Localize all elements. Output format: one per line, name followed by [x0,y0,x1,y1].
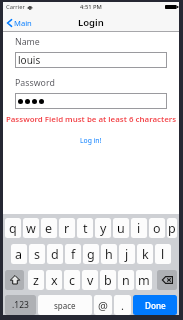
staticText: y [100,220,107,237]
button[interactable]: n [118,270,134,290]
button[interactable]: x [46,270,62,290]
button[interactable]: h [101,244,117,264]
staticText: p [168,220,176,237]
button[interactable]: Done [133,295,177,315]
button[interactable]: c [64,270,80,290]
button[interactable]: d [47,244,63,264]
button[interactable]: Main [3,16,38,30]
button[interactable]: . [114,295,131,315]
button[interactable] [15,93,167,109]
staticText: Login [78,16,104,29]
staticText: u [117,220,125,237]
staticText: m [138,272,150,289]
button[interactable]: a [11,244,27,264]
staticText: s [34,246,40,263]
button[interactable]: Shift [5,270,24,290]
button[interactable]: r [59,218,75,238]
button[interactable]: Log in! [76,134,106,147]
button[interactable]: g [83,244,99,264]
staticText: .123 [12,299,29,311]
staticText: a [15,246,23,263]
button[interactable]: p [167,218,177,238]
staticText: e [45,220,53,237]
staticText: Done [145,300,166,311]
button[interactable]: i [131,218,147,238]
button[interactable]: l [155,244,171,264]
button[interactable]: s [29,244,45,264]
staticText: f [71,246,76,263]
staticText: w [26,220,36,237]
staticText: g [87,246,95,263]
staticText: n [122,272,130,289]
staticText: Name [15,36,40,48]
button[interactable]: t [77,218,93,238]
button[interactable]: .123 [5,295,36,315]
button[interactable]: j [119,244,135,264]
button[interactable]: w [23,218,39,238]
staticText: j [125,246,129,263]
staticText: t [83,220,88,237]
staticText: k [142,246,149,263]
staticText: Log in! [80,136,102,145]
staticText: louis [18,53,41,67]
button[interactable]: louis [15,52,167,68]
button[interactable]: u [113,218,129,238]
staticText: b [104,272,112,289]
button[interactable]: e [41,218,57,238]
button[interactable]: q [5,218,21,238]
button[interactable]: y [95,218,111,238]
button[interactable]: b [100,270,116,290]
button[interactable]: k [137,244,153,264]
staticText: d [51,246,59,263]
staticText: Password Field must be at least 6 charac… [3,114,179,125]
staticText: . [121,298,124,313]
button[interactable]: f [65,244,81,264]
staticText: q [9,220,17,237]
button[interactable]: o [149,218,165,238]
button[interactable]: z [28,270,44,290]
staticText: l [161,246,165,263]
staticText: r [64,220,70,237]
button[interactable]: space [38,295,92,315]
staticText: Password [15,77,55,89]
staticText: space [54,300,76,311]
button[interactable]: m [136,270,152,290]
staticText: @ [98,298,108,313]
staticText: v [87,272,94,289]
staticText: o [153,220,161,237]
staticText: c [69,272,76,289]
staticText: 4:51 PM [80,3,102,11]
button[interactable]: @ [94,295,112,315]
staticText: Main [14,18,32,28]
staticText: z [33,272,39,289]
staticText: x [51,272,58,289]
staticText: i [137,220,141,237]
staticText: Carrier [6,3,25,11]
button[interactable]: v [82,270,98,290]
button[interactable]: Backspace [157,270,177,290]
staticText: h [105,246,113,263]
